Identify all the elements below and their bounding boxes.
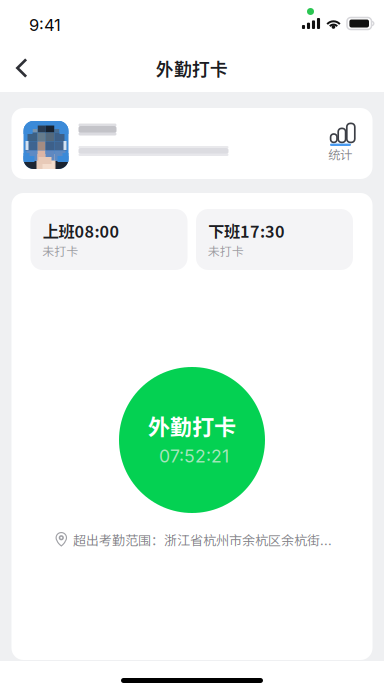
button[interactable]: 上班08:00 [30,209,187,270]
button[interactable]: 统计 [307,116,361,172]
staticText: 下班17:30 [208,219,285,243]
staticText: 未打卡 [208,242,244,259]
staticText: 统计 [328,145,352,163]
staticText: 上班08:00 [42,219,119,243]
staticText: 超出考勤范围：浙江省杭州市余杭区余杭街... [73,530,332,549]
button[interactable]: 外勤打卡 [119,365,265,515]
button[interactable]: 下班17:30 [196,209,353,270]
staticText: 9:41 [29,15,61,35]
staticText: 外勤打卡 [156,55,228,81]
staticText: 未打卡 [42,242,78,259]
button[interactable]: Back [0,44,44,92]
staticText: 07:52:21 [159,445,229,467]
staticText: 外勤打卡 [148,409,236,441]
